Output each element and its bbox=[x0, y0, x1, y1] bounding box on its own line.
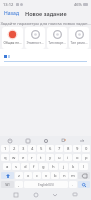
staticText: v bbox=[45, 173, 48, 179]
staticText: 8 bbox=[67, 146, 70, 152]
button[interactable]: More bbox=[78, 137, 85, 144]
button[interactable]: o bbox=[73, 154, 81, 161]
button[interactable]: Назад bbox=[0, 8, 23, 19]
staticText: w bbox=[12, 155, 16, 161]
staticText: Общая площадь bbox=[3, 41, 22, 45]
button[interactable]: 7 bbox=[55, 145, 63, 152]
staticText: 46% bbox=[74, 2, 82, 7]
button[interactable]: Clipboard bbox=[24, 137, 31, 144]
staticText: x bbox=[27, 173, 30, 179]
button[interactable]: v bbox=[42, 172, 50, 179]
button[interactable]: Recents bbox=[12, 191, 20, 199]
button[interactable]: 1 bbox=[1, 145, 9, 152]
button[interactable]: b bbox=[51, 172, 59, 179]
button[interactable]: Back bbox=[51, 191, 59, 199]
button[interactable]: 8 bbox=[64, 145, 72, 152]
button[interactable]: Shift bbox=[1, 172, 14, 179]
staticText: u bbox=[58, 155, 61, 161]
button[interactable]: Этажность дома bbox=[25, 27, 45, 49]
button[interactable]: Keyboard bbox=[71, 191, 79, 199]
staticText: 7 bbox=[58, 146, 61, 152]
staticText: k bbox=[72, 164, 75, 170]
button[interactable]: Home bbox=[32, 191, 40, 199]
staticText: f bbox=[33, 164, 35, 170]
button[interactable]: 4 bbox=[28, 145, 36, 152]
button[interactable]: z bbox=[15, 172, 23, 179]
staticText: Тип квартиры bbox=[48, 41, 66, 45]
button[interactable]: Emoji bbox=[6, 137, 13, 144]
button[interactable]: q bbox=[1, 154, 9, 161]
button[interactable]: !#1 bbox=[1, 181, 14, 188]
button[interactable]: a bbox=[3, 163, 11, 170]
button[interactable]: d bbox=[21, 163, 29, 170]
staticText: 2 bbox=[13, 146, 16, 152]
staticText: d bbox=[24, 164, 27, 170]
button[interactable]: 3 bbox=[19, 145, 27, 152]
button[interactable]: s bbox=[12, 163, 20, 170]
staticText: 5 bbox=[40, 146, 43, 152]
staticText: 9 bbox=[76, 146, 79, 152]
staticText: Новое задание bbox=[25, 10, 67, 17]
button[interactable]: c bbox=[33, 172, 41, 179]
button[interactable]: r bbox=[28, 154, 36, 161]
staticText: q bbox=[4, 155, 7, 161]
button[interactable]: Search bbox=[78, 181, 90, 188]
staticText: r bbox=[31, 155, 33, 161]
button[interactable]: , bbox=[15, 181, 23, 188]
staticText: g bbox=[42, 164, 45, 170]
staticText: English(US) bbox=[38, 183, 54, 187]
staticText: 3 bbox=[22, 146, 25, 152]
staticText: , bbox=[18, 182, 20, 187]
staticText: 13:12 bbox=[3, 2, 14, 7]
staticText: n bbox=[63, 173, 66, 179]
button[interactable]: t bbox=[37, 154, 45, 161]
button[interactable]: g bbox=[39, 163, 48, 170]
staticText: s bbox=[15, 164, 18, 170]
staticText: c bbox=[36, 173, 39, 179]
button[interactable]: f bbox=[30, 163, 38, 170]
button[interactable]: Общая площадь bbox=[2, 27, 23, 49]
staticText: 1 bbox=[4, 146, 7, 152]
staticText: . bbox=[72, 182, 74, 187]
staticText: 0 bbox=[85, 146, 88, 152]
button[interactable]: Settings bbox=[42, 137, 49, 144]
button[interactable]: m bbox=[69, 172, 77, 179]
staticText: i bbox=[67, 155, 69, 161]
button[interactable]: k bbox=[69, 163, 78, 170]
button[interactable]: . bbox=[69, 181, 77, 188]
button[interactable]: x bbox=[24, 172, 32, 179]
staticText: Задайте параметры для поиска новых задан… bbox=[0, 21, 91, 26]
button[interactable]: j bbox=[59, 163, 68, 170]
staticText: p bbox=[85, 155, 88, 161]
button[interactable]: n bbox=[60, 172, 68, 179]
button[interactable]: p bbox=[82, 154, 90, 161]
staticText: j bbox=[63, 164, 65, 170]
button[interactable]: i bbox=[64, 154, 72, 161]
staticText: 4 bbox=[31, 146, 34, 152]
button[interactable]: Backspace bbox=[78, 172, 90, 179]
button[interactable]: Тип квартиры bbox=[47, 27, 67, 49]
staticText: Этажность дома bbox=[26, 41, 44, 45]
button[interactable]: h bbox=[49, 163, 58, 170]
button[interactable]: Translate bbox=[60, 137, 67, 144]
button[interactable]: e bbox=[19, 154, 27, 161]
button[interactable]: l bbox=[79, 163, 88, 170]
staticText: a bbox=[6, 164, 9, 170]
staticText: m bbox=[71, 173, 75, 179]
button[interactable]: Тип ремонта bbox=[69, 27, 89, 49]
button[interactable]: w bbox=[10, 154, 18, 161]
button[interactable]: 6 bbox=[46, 145, 54, 152]
button[interactable]: 5 bbox=[37, 145, 45, 152]
button[interactable]: 2 bbox=[10, 145, 18, 152]
staticText: h bbox=[52, 164, 55, 170]
button[interactable]: 0 bbox=[82, 145, 90, 152]
staticText: Назад bbox=[4, 10, 19, 17]
button[interactable]: y bbox=[46, 154, 54, 161]
staticText: !#1 bbox=[5, 182, 11, 187]
button[interactable]: 9 bbox=[73, 145, 81, 152]
staticText: y bbox=[49, 155, 52, 161]
button[interactable]: English(US) bbox=[24, 181, 68, 188]
button[interactable]: u bbox=[55, 154, 63, 161]
staticText: e bbox=[22, 155, 25, 161]
staticText: o bbox=[76, 155, 79, 161]
